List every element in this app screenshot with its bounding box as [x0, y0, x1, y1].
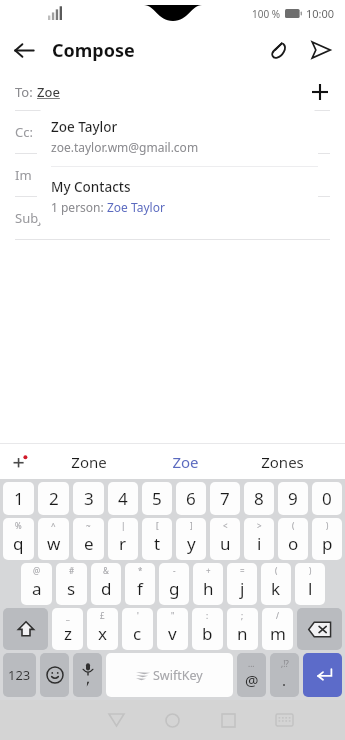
staticText: -: [173, 565, 176, 576]
staticText: <: [223, 520, 228, 531]
button[interactable]: Shift: [3, 608, 48, 650]
staticText: &: [103, 565, 109, 576]
staticText: ^: [51, 520, 56, 531]
staticText: |: [121, 520, 126, 531]
button[interactable]: 5: [142, 482, 172, 515]
button[interactable]: Period: [270, 653, 299, 697]
button[interactable]: &: [91, 563, 121, 605]
staticText: c: [133, 622, 142, 645]
button[interactable]: |: [108, 518, 138, 560]
staticText: s: [67, 577, 76, 600]
button[interactable]: ;: [227, 608, 258, 650]
staticText: ~: [86, 520, 91, 531]
button[interactable]: ~: [73, 518, 104, 560]
staticText: y: [187, 532, 196, 555]
staticText: e: [84, 532, 94, 555]
button[interactable]: #: [56, 563, 87, 605]
button[interactable]: Enter: [303, 653, 342, 697]
button[interactable]: More: [0, 444, 40, 479]
staticText: ): [309, 565, 312, 576]
staticText: 7: [220, 487, 230, 510]
button[interactable]: 3: [73, 482, 104, 515]
button[interactable]: Zone: [40, 444, 137, 479]
staticText: 3: [84, 487, 94, 510]
staticText: :: [206, 610, 209, 621]
staticText: 6: [186, 487, 196, 510]
button[interactable]: ^: [38, 518, 69, 560]
staticText: Zones: [261, 452, 304, 472]
staticText: h: [203, 577, 214, 600]
staticText: Zoe: [37, 83, 60, 101]
staticText: u: [220, 532, 231, 555]
button[interactable]: Zoe: [137, 444, 234, 479]
staticText: Im: [15, 166, 32, 184]
button[interactable]: :: [192, 608, 223, 650]
button[interactable]: *: [125, 563, 155, 605]
staticText: .: [282, 670, 287, 690]
staticText: l: [308, 577, 313, 600]
button[interactable]: 2: [38, 482, 69, 515]
button[interactable]: Add recipient: [305, 77, 335, 107]
staticText: =: [240, 565, 245, 576]
staticText: ;: [241, 610, 244, 621]
button[interactable]: ': [122, 608, 153, 650]
staticText: >: [257, 520, 262, 531]
button[interactable]: ): [312, 518, 342, 560]
button[interactable]: _: [52, 608, 83, 650]
button[interactable]: Hide keyboard: [256, 700, 312, 740]
button[interactable]: 4: [108, 482, 138, 515]
button[interactable]: Send: [301, 28, 341, 72]
button[interactable]: Zoe Taylor: [37, 107, 318, 166]
button[interactable]: <: [210, 518, 240, 560]
button[interactable]: 8: [244, 482, 274, 515]
staticText: 5: [152, 487, 162, 510]
staticText: g: [169, 577, 180, 600]
staticText: b: [202, 622, 213, 645]
button[interactable]: -: [159, 563, 189, 605]
staticText: *: [138, 565, 143, 576]
button[interactable]: Emoji: [40, 653, 69, 697]
button[interactable]: +: [193, 563, 223, 605]
button[interactable]: %: [3, 518, 34, 560]
button[interactable]: ): [295, 563, 325, 605]
staticText: zoe.taylor.wm@gmail.com: [51, 139, 199, 155]
staticText: 0: [322, 487, 332, 510]
button[interactable]: 7: [210, 482, 240, 515]
button[interactable]: (: [261, 563, 291, 605]
staticText: @: [245, 670, 259, 690]
button[interactable]: 6: [176, 482, 206, 515]
staticText: 1 person:: [51, 199, 107, 215]
button[interactable]: 9: [278, 482, 308, 515]
button[interactable]: ": [157, 608, 188, 650]
staticText: n: [237, 622, 248, 645]
button[interactable]: Backspace: [297, 608, 342, 650]
button[interactable]: ]: [176, 518, 206, 560]
button[interactable]: Voice input: [73, 653, 102, 697]
button[interactable]: Space: [106, 653, 233, 697]
button[interactable]: Back: [0, 26, 48, 74]
staticText: %: [15, 520, 22, 531]
staticText: 10:00: [306, 6, 335, 21]
button[interactable]: 1: [3, 482, 34, 515]
staticText: 100 %: [252, 7, 281, 21]
staticText: (: [292, 520, 295, 531]
button[interactable]: @: [21, 563, 52, 605]
button[interactable]: =: [227, 563, 257, 605]
button[interactable]: Attach: [257, 28, 301, 72]
button[interactable]: Numbers: [3, 653, 36, 697]
staticText: @: [33, 565, 41, 576]
button[interactable]: My Contacts: [37, 167, 318, 227]
button[interactable]: Recents: [200, 700, 256, 740]
button[interactable]: £: [87, 608, 118, 650]
button[interactable]: (: [278, 518, 308, 560]
button[interactable]: [: [142, 518, 172, 560]
button[interactable]: At sign: [237, 653, 266, 697]
button[interactable]: Zones: [234, 444, 331, 479]
staticText: To:: [15, 83, 37, 101]
button[interactable]: >: [244, 518, 274, 560]
button[interactable]: 0: [312, 482, 342, 515]
button[interactable]: /: [262, 608, 293, 650]
staticText: +: [206, 565, 211, 576]
